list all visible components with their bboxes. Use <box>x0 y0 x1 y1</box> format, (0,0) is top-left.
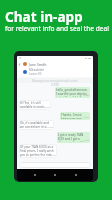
staticText: Hi! Yes, it's still available in stock. <box>20 101 50 109</box>
staticText: I got a ready TIAN 8,00 and I get a disc… <box>58 133 89 142</box>
staticText: 10:24 <box>47 126 53 129</box>
staticText: 10:24 <box>83 139 89 142</box>
button[interactable]: Hi! Yes, it's still available in stock. <box>19 100 51 110</box>
staticText: TODAY <box>51 83 60 87</box>
button[interactable]: nav 1 <box>52 172 58 178</box>
button[interactable]: nav 0 <box>32 172 38 178</box>
staticText: 10:24 <box>50 154 56 157</box>
staticText: Jane Smith <box>29 62 47 67</box>
button[interactable]: Ok, it's available and we can deliver it… <box>19 120 54 130</box>
button[interactable]: Of your TIAN 8,000 as a final prices. I … <box>19 144 57 158</box>
button[interactable]: nav 2 <box>73 172 79 178</box>
staticText: Ok, it's available and we can deliver it… <box>20 121 53 129</box>
button[interactable]: Mitsubishi <box>17 68 93 76</box>
staticText: hello, good afternoon. I saw the your ob… <box>56 88 89 97</box>
staticText: Of your TIAN 8,000 as a final prices. I … <box>20 145 56 157</box>
staticText: 10:24 <box>83 116 89 119</box>
staticText: Lancer EX <box>29 72 42 76</box>
button[interactable]: Back <box>17 60 93 68</box>
staticText: for relevant info and seal the deal <box>5 24 109 33</box>
button[interactable] <box>19 162 91 168</box>
button[interactable]: hello, good afternoon. I saw the your ob… <box>55 87 90 98</box>
staticText: 10:24 <box>44 106 50 109</box>
staticText: Chat in-app <box>5 7 83 26</box>
staticText: 10:24 <box>83 94 89 97</box>
button[interactable]: Thanks. I must bring over one. <box>60 112 90 120</box>
other: Back <box>18 63 21 66</box>
staticText: Thanks. I must bring over one. <box>61 113 89 119</box>
button[interactable]: I got a ready TIAN 8,00 and I get a disc… <box>57 132 90 143</box>
staticText: Mitsubishi <box>29 68 45 72</box>
staticText: Messages are encrypted end-to-end <box>32 79 78 83</box>
